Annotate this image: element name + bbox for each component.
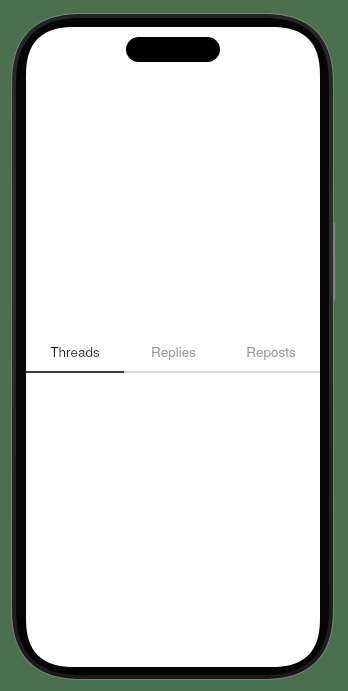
other: Dynamic Island [126, 37, 220, 62]
staticText: Reposts [246, 342, 296, 361]
staticText: Replies [151, 342, 196, 361]
button[interactable]: Reposts [222, 331, 320, 371]
staticText: Threads [50, 342, 100, 361]
button[interactable]: Threads [26, 331, 124, 371]
button[interactable]: Replies [124, 331, 222, 371]
